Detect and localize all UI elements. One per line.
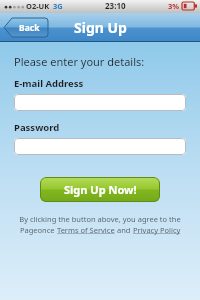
staticText: 23:10 (105, 0, 126, 11)
button[interactable]: Privacy Policy (133, 225, 181, 235)
staticText: Privacy Policy (133, 225, 181, 235)
staticText: Please enter your details: (14, 54, 145, 69)
button[interactable] (14, 138, 186, 155)
staticText: Sign Up Now! (64, 182, 137, 197)
staticText: and (115, 225, 133, 235)
button[interactable]: Back (4, 18, 48, 37)
staticText: Sign Up (74, 18, 127, 37)
staticText: O2-UK (26, 1, 50, 11)
staticText: 3G (53, 1, 63, 11)
staticText: 3% (168, 1, 180, 11)
button[interactable]: Terms of Service (57, 225, 115, 235)
staticText: By clicking the button above, you agree … (19, 214, 181, 224)
button[interactable]: Sign Up Now! (40, 177, 160, 202)
staticText: E-mail Address (14, 77, 84, 90)
staticText: Password (14, 121, 60, 134)
staticText: Terms of Service (57, 225, 115, 235)
staticText: Back (19, 22, 40, 34)
staticText: Pageonce (20, 225, 57, 235)
button[interactable] (14, 94, 186, 111)
